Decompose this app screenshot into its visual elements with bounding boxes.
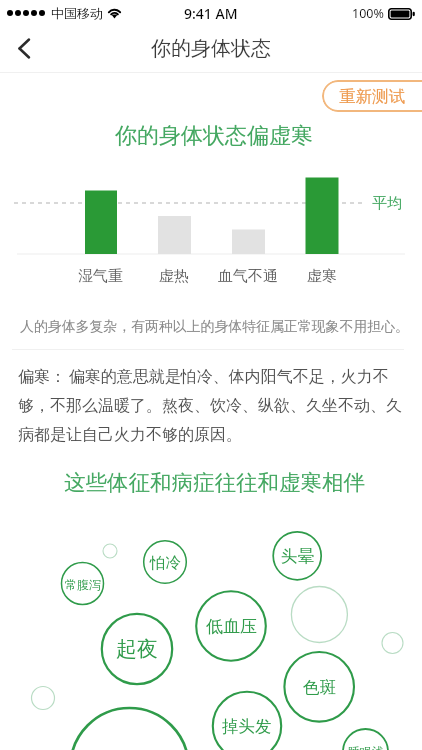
- staticText: 怕冷: [150, 553, 181, 573]
- staticText: 重新测试: [339, 86, 405, 107]
- staticText: 9:41 AM: [184, 4, 238, 23]
- staticText: 起夜: [116, 636, 158, 662]
- button[interactable]: 头晕: [273, 532, 321, 580]
- button[interactable]: Back: [0, 26, 48, 71]
- staticText: 常腹泻: [65, 577, 101, 592]
- staticText: 虚热: [159, 267, 189, 286]
- staticText: 中国移动: [51, 5, 103, 21]
- staticText: 人的身体多复杂，有两种以上的身体特征属正常现象不用担心。: [20, 318, 409, 336]
- button[interactable]: 色斑: [284, 652, 354, 722]
- button[interactable]: 掉头发: [213, 692, 281, 750]
- staticText: 掉头发: [222, 716, 272, 737]
- staticText: 偏寒： 偏寒的意思就是怕冷、体内阳气不足，火力不够，不那么温暖了。熬夜、饮冷、纵…: [18, 365, 406, 444]
- staticText: 100%: [352, 5, 384, 22]
- button[interactable]: 重新测试: [322, 80, 422, 112]
- staticText: 湿气重: [78, 267, 123, 286]
- staticText: 头晕: [281, 546, 314, 567]
- staticText: 睡眠浅: [348, 744, 384, 750]
- staticText: 血气不通: [218, 267, 278, 286]
- staticText: 低血压: [206, 616, 257, 637]
- button[interactable]: 怕冷: [144, 541, 187, 584]
- button[interactable]: 睡眠浅: [343, 729, 388, 750]
- staticText: 你的身体状态偏虚寒: [115, 122, 313, 150]
- button[interactable]: 低血压: [196, 591, 266, 661]
- staticText: 平均: [372, 194, 402, 213]
- staticText: 色斑: [303, 677, 336, 698]
- button[interactable]: 起夜: [102, 614, 172, 684]
- staticText: 这些体征和病症往往和虚寒相伴: [64, 469, 365, 496]
- staticText: 你的身体状态: [151, 36, 271, 61]
- staticText: 虚寒: [307, 267, 337, 286]
- button[interactable]: 常腹泻: [62, 563, 104, 605]
